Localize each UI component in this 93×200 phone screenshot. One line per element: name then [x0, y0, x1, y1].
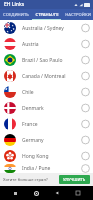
button[interactable]: Denmark	[0, 100, 93, 116]
staticText: СТРАНЫ/ГЕ	[35, 12, 59, 18]
staticText: Canada / Montreal	[22, 73, 81, 80]
staticText: Hong Kong	[22, 153, 81, 160]
button[interactable]: Brazil / Sao Paulo	[0, 52, 93, 68]
staticText: Denmark	[22, 105, 81, 112]
button[interactable]: Chile	[0, 84, 93, 100]
button[interactable]: Back	[51, 187, 63, 199]
button[interactable]: Germany	[0, 132, 93, 148]
staticText: France	[22, 121, 81, 128]
staticText: Хотите больше стран?	[3, 177, 48, 183]
staticText: Austria	[22, 41, 81, 48]
button[interactable]: Hong Kong	[0, 148, 93, 164]
staticText: Brazil / Sao Paulo	[22, 57, 81, 64]
button[interactable]: Recents	[9, 187, 21, 199]
button[interactable]: УЛУЧШИТЬ	[59, 175, 90, 184]
button[interactable]: НАСТРОЙКИ	[62, 9, 93, 20]
staticText: НАСТРОЙКИ	[65, 12, 91, 18]
button[interactable]: Home	[30, 187, 42, 199]
button[interactable]: Austria	[0, 36, 93, 52]
button[interactable]: Australia / Sydney	[0, 20, 93, 36]
button[interactable]: India / Pune	[0, 164, 93, 173]
staticText: Chile	[22, 89, 81, 96]
button[interactable]: France	[0, 116, 93, 132]
button[interactable]: СТРАНЫ/ГЕ	[31, 9, 62, 20]
staticText: Germany	[22, 137, 81, 144]
staticText: Australia / Sydney	[22, 25, 81, 32]
staticText: EH Links	[4, 1, 25, 8]
button[interactable]: Canada / Montreal	[0, 68, 93, 84]
button[interactable]: СОЕДИНИТЬ	[0, 9, 31, 20]
staticText: India / Pune	[22, 165, 81, 172]
button[interactable]: Screenshot	[72, 187, 84, 199]
staticText: УЛУЧШИТЬ	[63, 177, 86, 182]
staticText: СОЕДИНИТЬ	[3, 12, 29, 18]
